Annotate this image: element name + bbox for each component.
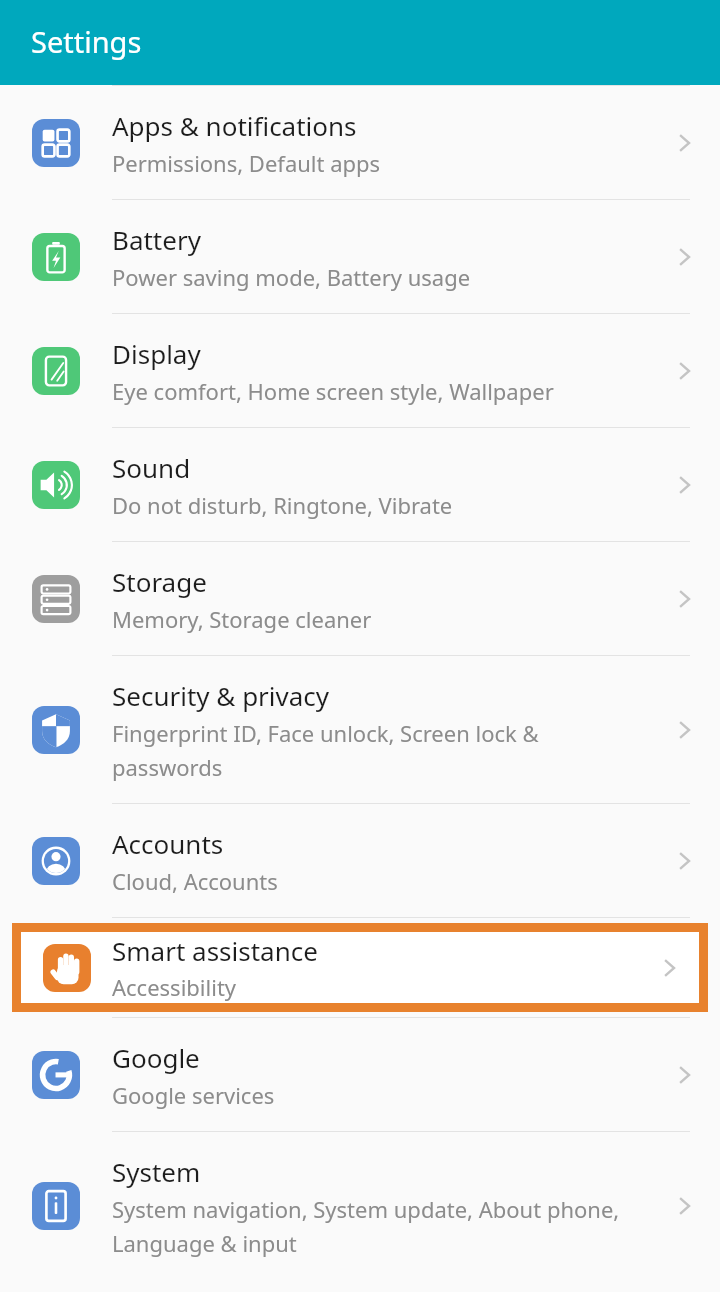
staticText: Permissions, Default apps (112, 148, 381, 178)
staticText: System (112, 1154, 201, 1189)
button[interactable]: Google (0, 1018, 720, 1131)
staticText: Storage (112, 564, 207, 599)
staticText: Display (112, 336, 201, 371)
staticText: Power saving mode, Battery usage (112, 262, 471, 292)
button[interactable]: Apps & notifications (0, 86, 720, 199)
button[interactable]: Battery (0, 200, 720, 313)
staticText: Google (112, 1040, 200, 1075)
button[interactable]: Accounts (0, 804, 720, 917)
staticText: Apps & notifications (112, 108, 357, 143)
staticText: Accessibility (112, 972, 237, 1002)
staticText: Sound (112, 450, 191, 485)
other: Open (670, 357, 698, 385)
other: Open (670, 847, 698, 875)
button[interactable]: Display (0, 314, 720, 427)
other: Open (655, 954, 683, 982)
staticText: Accounts (112, 826, 224, 861)
staticText: Security & privacy (112, 678, 330, 713)
staticText: System navigation, System update, About … (112, 1194, 638, 1258)
staticText: Cloud, Accounts (112, 866, 278, 896)
button[interactable]: Smart assistance (21, 932, 699, 1003)
button[interactable]: Sound (0, 428, 720, 541)
other: Open (670, 585, 698, 613)
other: Open (670, 1192, 698, 1220)
staticText: Fingerprint ID, Face unlock, Screen lock… (112, 718, 638, 782)
staticText: Battery (112, 222, 201, 257)
staticText: Memory, Storage cleaner (112, 604, 372, 634)
staticText: Do not disturb, Ringtone, Vibrate (112, 490, 453, 520)
staticText: Eye comfort, Home screen style, Wallpape… (112, 376, 554, 406)
staticText: Settings (31, 22, 142, 61)
other: Open (670, 243, 698, 271)
staticText: Google services (112, 1080, 275, 1110)
button[interactable]: System (0, 1132, 720, 1279)
staticText: Smart assistance (112, 933, 318, 968)
other: Open (670, 716, 698, 744)
other: Open (670, 471, 698, 499)
other: Open (670, 1061, 698, 1089)
button[interactable]: Security & privacy (0, 656, 720, 803)
button[interactable]: Storage (0, 542, 720, 655)
other: Open (670, 129, 698, 157)
